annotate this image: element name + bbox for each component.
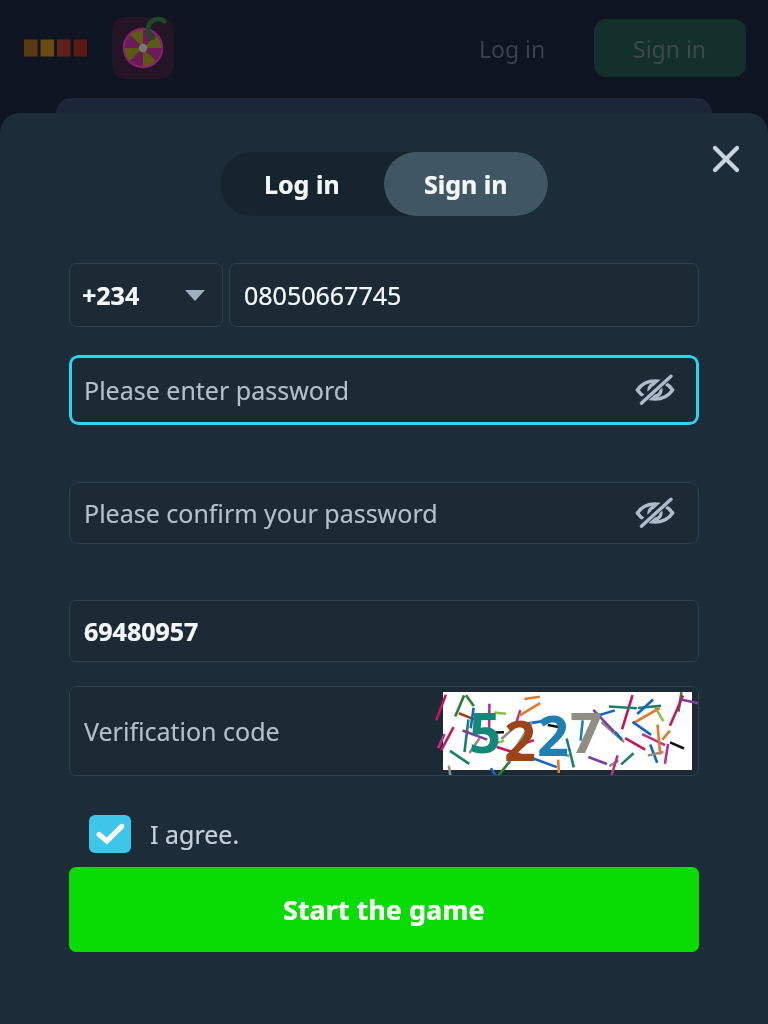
button[interactable]: Sign in bbox=[384, 152, 548, 216]
button[interactable]: 08050667745 bbox=[229, 263, 699, 327]
button[interactable]: Toggle password visibility bbox=[633, 368, 677, 412]
button[interactable]: Please confirm your password bbox=[69, 482, 699, 544]
button[interactable]: Please enter password bbox=[69, 355, 699, 425]
staticText: Log in bbox=[479, 33, 546, 64]
button[interactable]: Start the game bbox=[69, 867, 699, 952]
staticText: 69480957 bbox=[84, 614, 199, 648]
button[interactable]: Toggle password visibility bbox=[633, 491, 677, 535]
button[interactable]: Refresh captcha bbox=[443, 692, 692, 770]
button[interactable]: Close bbox=[704, 137, 748, 181]
button[interactable]: Sign in bbox=[594, 19, 746, 77]
staticText: Start the game bbox=[283, 891, 485, 928]
staticText: 7 bbox=[570, 693, 603, 769]
staticText: Log in bbox=[264, 167, 340, 201]
staticText: I agree. bbox=[150, 817, 240, 851]
button[interactable]: +234 bbox=[69, 263, 223, 327]
staticText: Please confirm your password bbox=[84, 496, 438, 530]
staticText: Verification code bbox=[84, 714, 280, 748]
button[interactable]: I agree. bbox=[89, 810, 240, 858]
button[interactable]: 69480957 bbox=[69, 600, 699, 662]
button[interactable]: Verification code bbox=[69, 686, 699, 776]
staticText: +234 bbox=[82, 278, 140, 312]
staticText: 2 bbox=[537, 696, 570, 770]
staticText: Sign in bbox=[633, 33, 707, 64]
button[interactable]: Log in bbox=[455, 19, 570, 78]
staticText: Please enter password bbox=[84, 373, 350, 407]
staticText: 2 bbox=[504, 701, 537, 770]
staticText: 08050667745 bbox=[244, 278, 402, 312]
staticText: 5 bbox=[469, 693, 502, 769]
button[interactable]: Log in bbox=[220, 152, 384, 216]
staticText: Sign in bbox=[424, 167, 508, 201]
